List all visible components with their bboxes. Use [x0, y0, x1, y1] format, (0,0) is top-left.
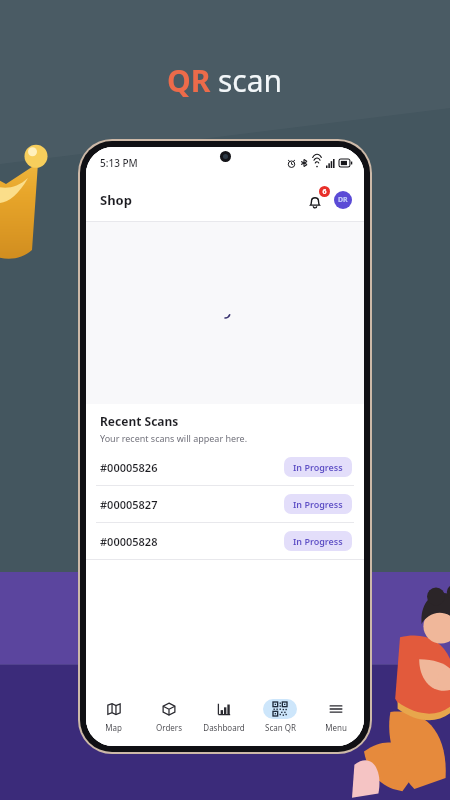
- button[interactable]: #00005827: [86, 486, 364, 522]
- staticText: In Progress: [293, 535, 343, 547]
- staticText: #00005827: [100, 497, 158, 512]
- button[interactable]: In Progress: [284, 457, 352, 477]
- button[interactable]: Profile: [334, 191, 352, 209]
- button[interactable]: Scan QR: [252, 696, 308, 736]
- staticText: #00005828: [100, 534, 158, 549]
- staticText: Menu: [325, 722, 347, 733]
- button[interactable]: In Progress: [284, 494, 352, 514]
- staticText: 6: [322, 187, 327, 197]
- staticText: Scan QR: [265, 722, 296, 733]
- button[interactable]: Notifications: [302, 187, 328, 213]
- staticText: Your recent scans will appear here.: [100, 432, 248, 444]
- staticText: #00005826: [100, 460, 158, 475]
- staticText: In Progress: [293, 461, 343, 473]
- staticText: scan: [218, 60, 283, 101]
- button[interactable]: Orders: [141, 696, 196, 736]
- staticText: Dashboard: [203, 722, 245, 733]
- button[interactable]: Menu: [308, 696, 364, 736]
- button[interactable]: #00005826: [86, 449, 364, 485]
- button[interactable]: Dashboard: [196, 696, 252, 736]
- staticText: Shop: [100, 191, 132, 209]
- button[interactable]: Map: [86, 696, 141, 736]
- staticText: Recent Scans: [100, 413, 179, 429]
- staticText: Orders: [156, 722, 182, 733]
- staticText: DR: [338, 195, 348, 205]
- button[interactable]: #00005828: [86, 523, 364, 559]
- button[interactable]: In Progress: [284, 531, 352, 551]
- staticText: QR: [167, 60, 211, 101]
- staticText: Map: [105, 722, 122, 733]
- staticText: In Progress: [293, 498, 343, 510]
- staticText: 5:13 PM: [100, 156, 138, 170]
